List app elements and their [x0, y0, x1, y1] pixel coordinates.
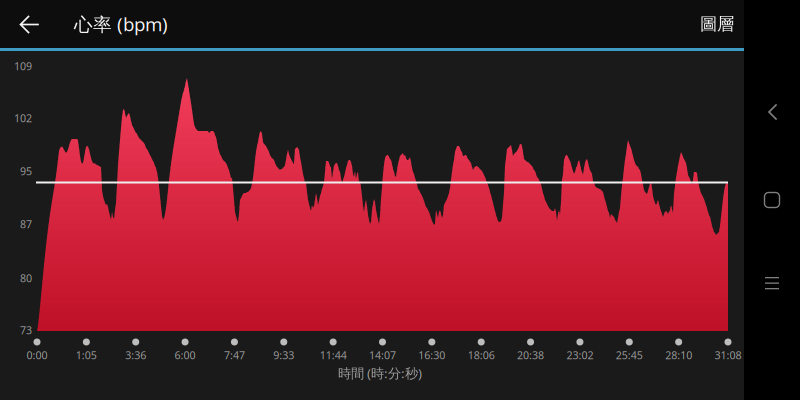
staticText: 31:08 — [714, 348, 741, 362]
staticText: 25:45 — [616, 348, 643, 362]
staticText: 圖層 — [700, 13, 734, 35]
staticText: 95 — [20, 164, 32, 178]
staticText: 9:33 — [273, 348, 294, 362]
staticText: 7:47 — [224, 348, 245, 362]
staticText: 109 — [14, 59, 32, 73]
staticText: 80 — [20, 271, 32, 285]
staticText: 14:07 — [369, 348, 396, 362]
staticText: 28:10 — [665, 348, 692, 362]
button[interactable]: Home — [744, 172, 800, 228]
staticText: 6:00 — [175, 348, 196, 362]
button[interactable]: Recent apps — [744, 255, 800, 311]
staticText: 0:00 — [26, 348, 47, 362]
staticText: 102 — [14, 111, 32, 125]
button[interactable]: Back — [0, 0, 58, 48]
staticText: 3:36 — [125, 348, 146, 362]
staticText: 73 — [20, 323, 32, 337]
staticText: 87 — [20, 217, 32, 231]
staticText: 18:06 — [468, 348, 495, 362]
staticText: 時間 (時:分:秒) — [338, 364, 422, 382]
staticText: 11:44 — [320, 348, 347, 362]
button[interactable]: 圖層 — [679, 0, 755, 48]
staticText: 1:05 — [76, 348, 97, 362]
staticText: 23:02 — [566, 348, 593, 362]
staticText: 20:38 — [517, 348, 544, 362]
button[interactable]: Back — [744, 84, 800, 140]
staticText: 16:30 — [418, 348, 445, 362]
staticText: 心率 (bpm) — [74, 12, 168, 36]
